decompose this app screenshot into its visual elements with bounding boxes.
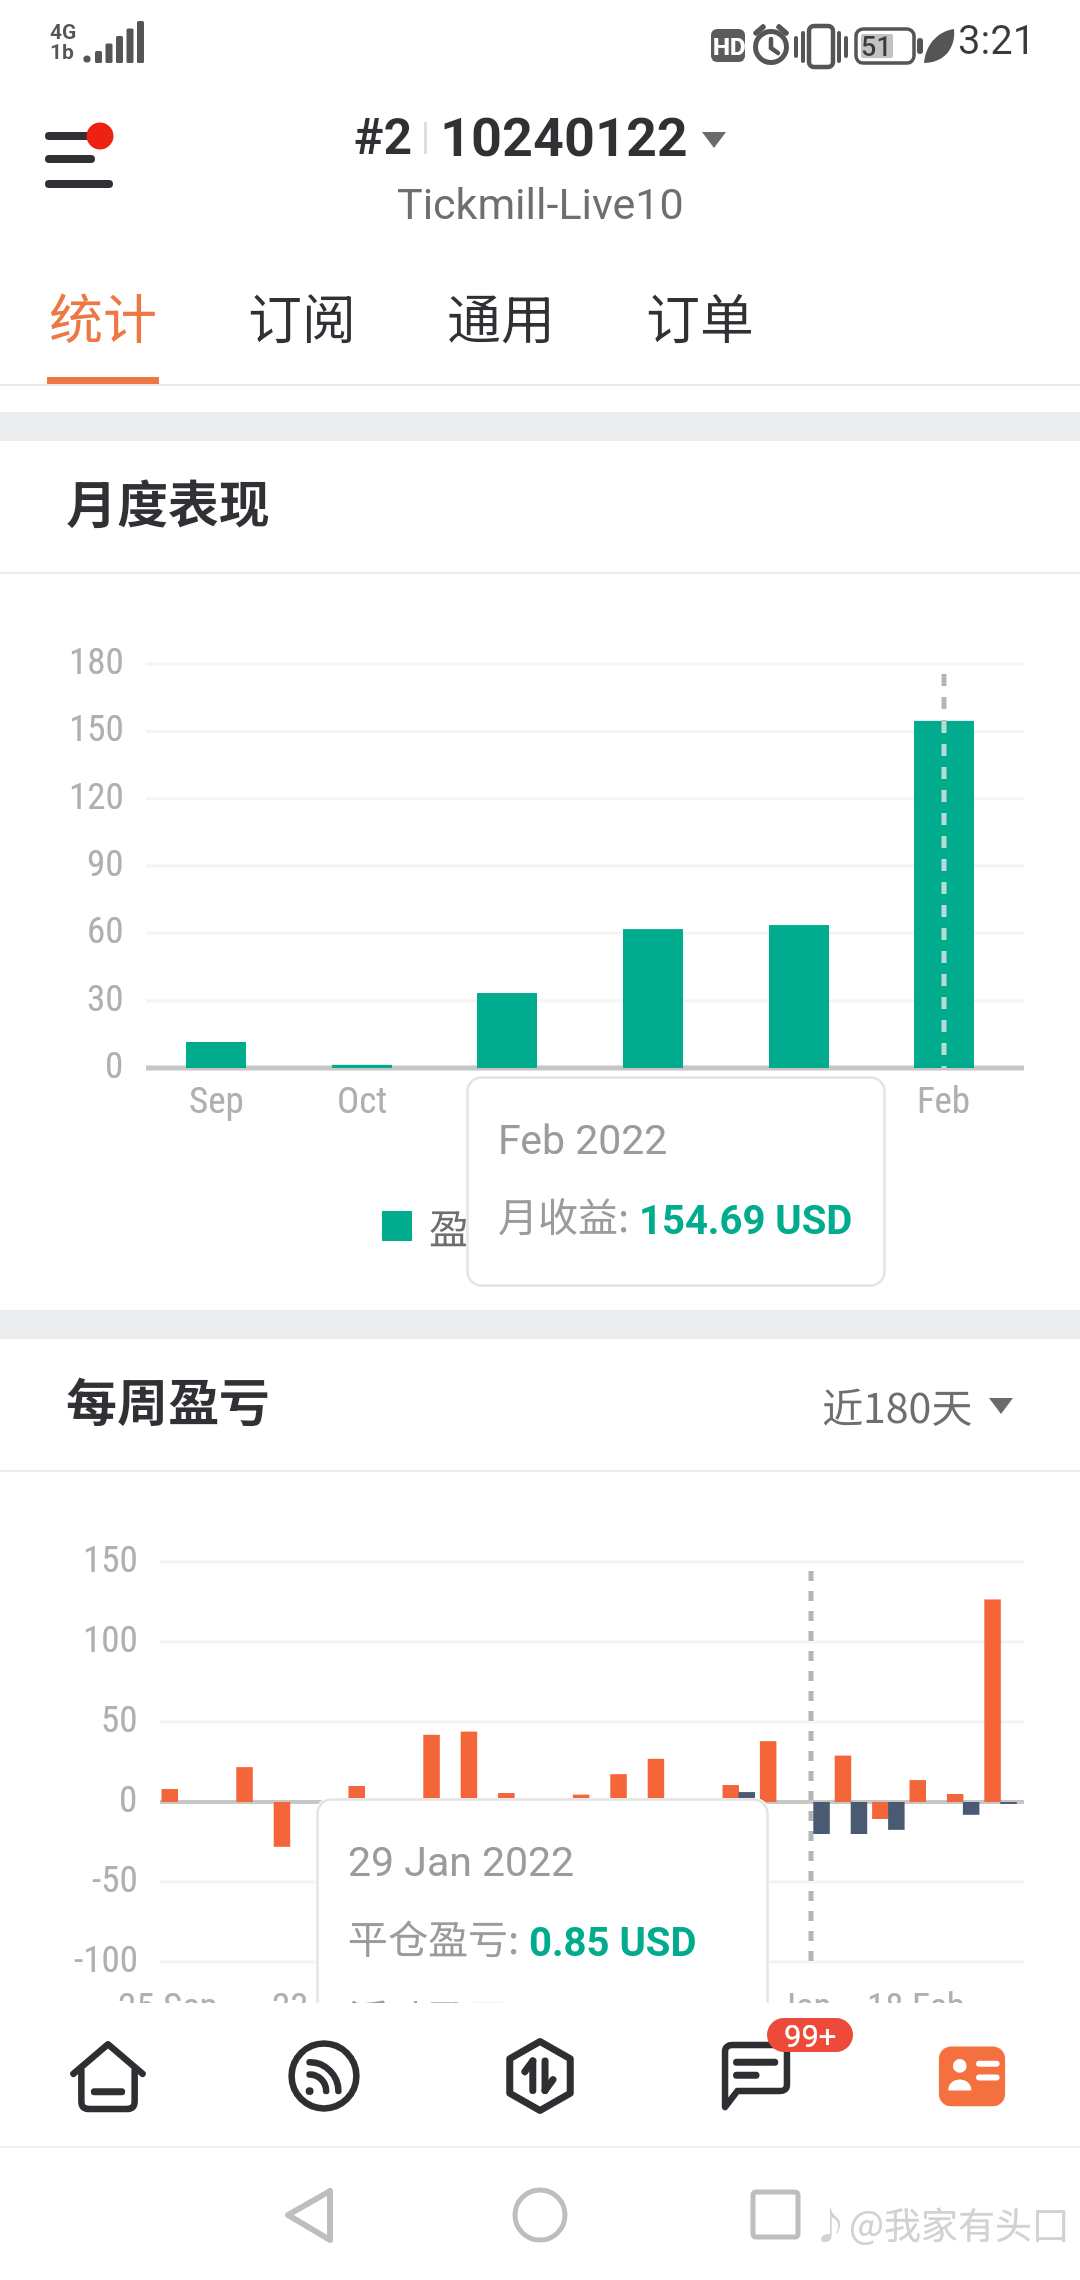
button[interactable]: 通用 (445, 232, 557, 384)
staticText: 51 (861, 31, 892, 63)
staticText: 通用 (447, 276, 555, 354)
staticText: -50 (92, 1858, 138, 1901)
staticText: 25 Sep (118, 1985, 218, 2003)
staticText: 3:21 (958, 17, 1036, 64)
staticText: 浮动盈亏: (348, 1988, 529, 2003)
staticText: 0.85 USD (529, 1919, 697, 1966)
staticText: 0 (105, 1044, 124, 1087)
staticText: Feb (917, 1079, 971, 1122)
staticText: 盈亏 (429, 1196, 511, 1255)
staticText: 订阅 (248, 276, 356, 354)
button[interactable]: Menu (28, 106, 132, 208)
staticText: 120 (69, 775, 124, 818)
staticText: 统计 (49, 276, 157, 354)
staticText: 150 (69, 707, 124, 750)
button[interactable]: 订单 (644, 232, 756, 384)
staticText: 29 Jan 2022 (348, 1838, 575, 1886)
staticText: 150 (83, 1538, 138, 1581)
button[interactable]: Signals (216, 2003, 432, 2148)
staticText: #2 (354, 108, 413, 167)
staticText: Oct (337, 1079, 388, 1122)
staticText: 180 (69, 640, 124, 683)
button[interactable]: Messages (648, 2003, 864, 2148)
staticText: 订单 (646, 276, 754, 354)
staticText: 月度表现 (66, 464, 271, 538)
staticText: 4G (50, 20, 77, 45)
staticText: Feb 2022 (498, 1116, 668, 1164)
button[interactable]: 订阅 (246, 232, 358, 384)
button[interactable]: 统计 (47, 232, 159, 384)
staticText: HD (713, 33, 746, 61)
staticText: 154.69 USD (639, 1197, 853, 1244)
staticText: 18 Feb (867, 1985, 966, 2003)
staticText: -100 (74, 1938, 138, 1981)
staticText: 10240122 (440, 106, 688, 169)
staticText: 90 (87, 842, 124, 885)
staticText: 平仓盈亏: (348, 1908, 529, 1966)
staticText: 近180天 (822, 1375, 973, 1434)
staticText: 99+ (784, 2018, 837, 2052)
staticText: 50 (101, 1698, 138, 1741)
button[interactable]: Profile (864, 2003, 1080, 2148)
button[interactable]: 近180天 (822, 1375, 1013, 1434)
staticText: Tickmill-Live10 (397, 179, 684, 229)
staticText: 每周盈亏 (66, 1362, 271, 1436)
staticText: 23 Oct (272, 1985, 368, 2003)
staticText: 100 (83, 1618, 138, 1661)
staticText: 0 (119, 1778, 138, 1821)
staticText: 60 (87, 909, 124, 952)
button[interactable]: Home (0, 2003, 216, 2148)
staticText: Sep (189, 1079, 244, 1122)
staticText: 月收益: (498, 1186, 639, 1244)
staticText: 30 (87, 977, 124, 1020)
staticText: ♪@我家有头囗 (812, 2196, 1070, 2250)
staticText: 1b (50, 40, 74, 65)
staticText: Jan (778, 1985, 832, 2003)
button[interactable]: Trade (432, 2003, 648, 2148)
button[interactable]: Back (230, 2148, 380, 2280)
